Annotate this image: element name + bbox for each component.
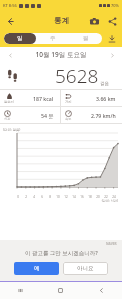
staticText: 속도 — [65, 117, 72, 121]
button[interactable]: 아니요 — [63, 262, 108, 275]
staticText: 70% — [111, 3, 119, 8]
staticText: 거리 — [65, 100, 72, 104]
staticText: 14 — [70, 195, 78, 199]
staticText: 8 — [46, 195, 54, 199]
staticText: KT 8:56 — [3, 3, 17, 8]
button[interactable]: 거리 — [61, 90, 122, 106]
button[interactable]: 주 — [36, 33, 69, 44]
button[interactable]: Next day — [106, 49, 118, 61]
button[interactable]: 일 — [4, 33, 36, 44]
staticText: 2.79 km/h — [91, 112, 116, 119]
staticText: 10 — [54, 195, 62, 199]
staticText: 예 — [34, 265, 40, 272]
staticText: (단위: 시간) — [3, 199, 118, 203]
button[interactable]: Share — [105, 14, 119, 28]
button[interactable]: Back — [81, 282, 122, 299]
button[interactable]: Home — [40, 282, 81, 299]
staticText: 통계 — [54, 16, 69, 25]
staticText: 칼로리 — [4, 100, 14, 104]
staticText: 6 — [38, 195, 46, 199]
staticText: 시간 — [4, 117, 11, 121]
button[interactable]: Download — [105, 32, 118, 45]
button[interactable]: 속도 — [61, 107, 122, 123]
staticText: 16 — [78, 195, 86, 199]
staticText: 0 — [14, 195, 22, 199]
staticText: 12 — [62, 195, 70, 199]
staticText: 아니요 — [77, 265, 94, 272]
staticText: 4 — [30, 195, 38, 199]
staticText: 3.66 km — [96, 95, 116, 102]
button[interactable]: Camera — [87, 14, 101, 28]
staticText: 20 — [94, 195, 102, 199]
button[interactable]: 예 — [14, 262, 59, 275]
staticText: 5628 — [55, 63, 99, 89]
staticText: 24 — [110, 195, 118, 199]
button[interactable]: Recents — [0, 282, 40, 299]
staticText: 이 광고를 그만 보시겠습니까? — [25, 249, 98, 257]
button[interactable]: 월 — [69, 33, 102, 44]
staticText: 걸음 — [100, 81, 109, 87]
staticText: NAVER — [106, 242, 117, 246]
staticText: 54 분 — [41, 112, 54, 119]
staticText: 일 — [17, 35, 23, 42]
staticText: 187 kcal — [33, 95, 54, 102]
staticText: (단위: 걸음) — [3, 127, 21, 132]
staticText: 22 — [102, 195, 110, 199]
button[interactable]: Back — [2, 13, 18, 29]
staticText: 10월 19일 토요일 — [16, 50, 106, 59]
staticText: 18 — [86, 195, 94, 199]
button[interactable]: 시간 — [0, 107, 60, 123]
staticText: 2 — [22, 195, 30, 199]
button[interactable]: 칼로리 — [0, 90, 60, 106]
staticText: 주 — [50, 35, 56, 42]
button[interactable]: Previous day — [4, 49, 16, 61]
staticText: 월 — [83, 35, 89, 42]
